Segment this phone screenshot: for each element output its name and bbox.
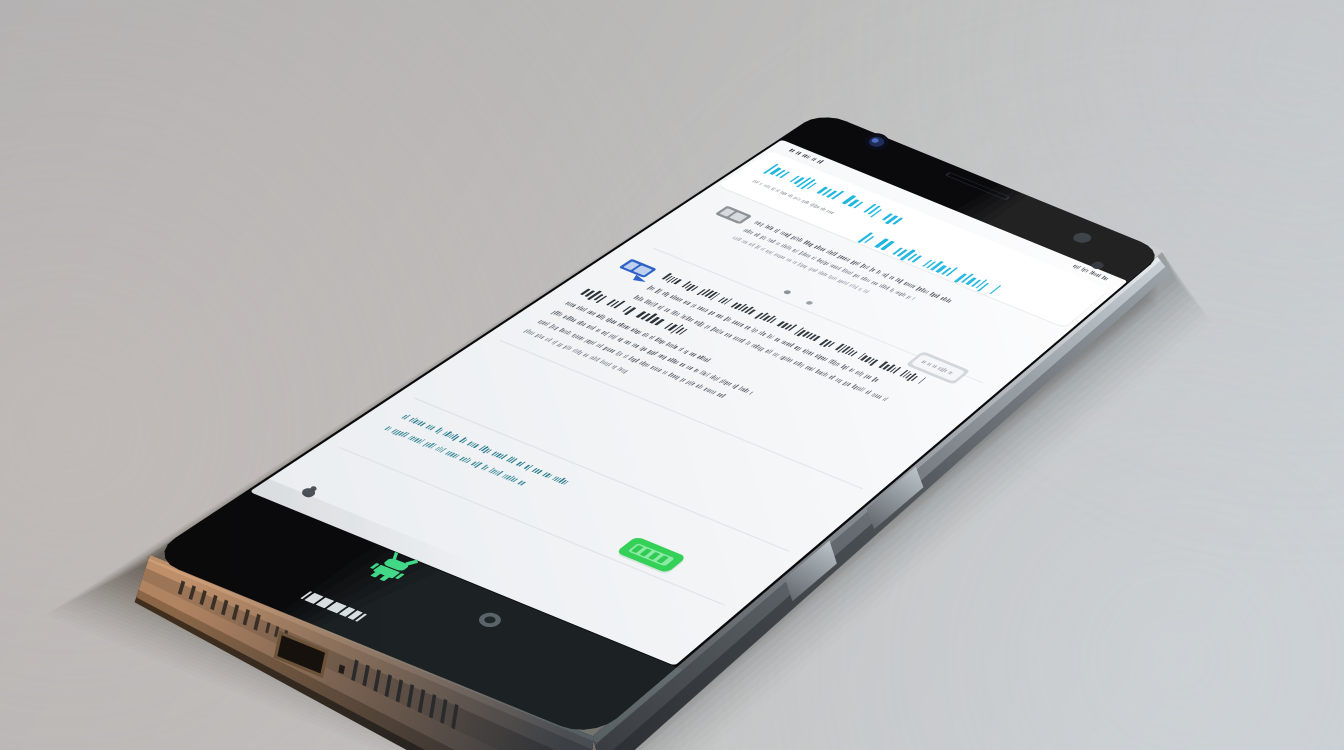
button[interactable]: Sound [282,478,338,508]
button[interactable] [512,284,934,480]
button[interactable] [366,406,616,521]
button[interactable] [679,197,1048,361]
button[interactable] [584,253,974,428]
button[interactable]: Apps [339,541,445,595]
button[interactable]: Compose [608,532,691,577]
button[interactable] [717,150,1108,326]
button[interactable]: More options [900,347,976,387]
button[interactable]: Home [448,598,530,641]
